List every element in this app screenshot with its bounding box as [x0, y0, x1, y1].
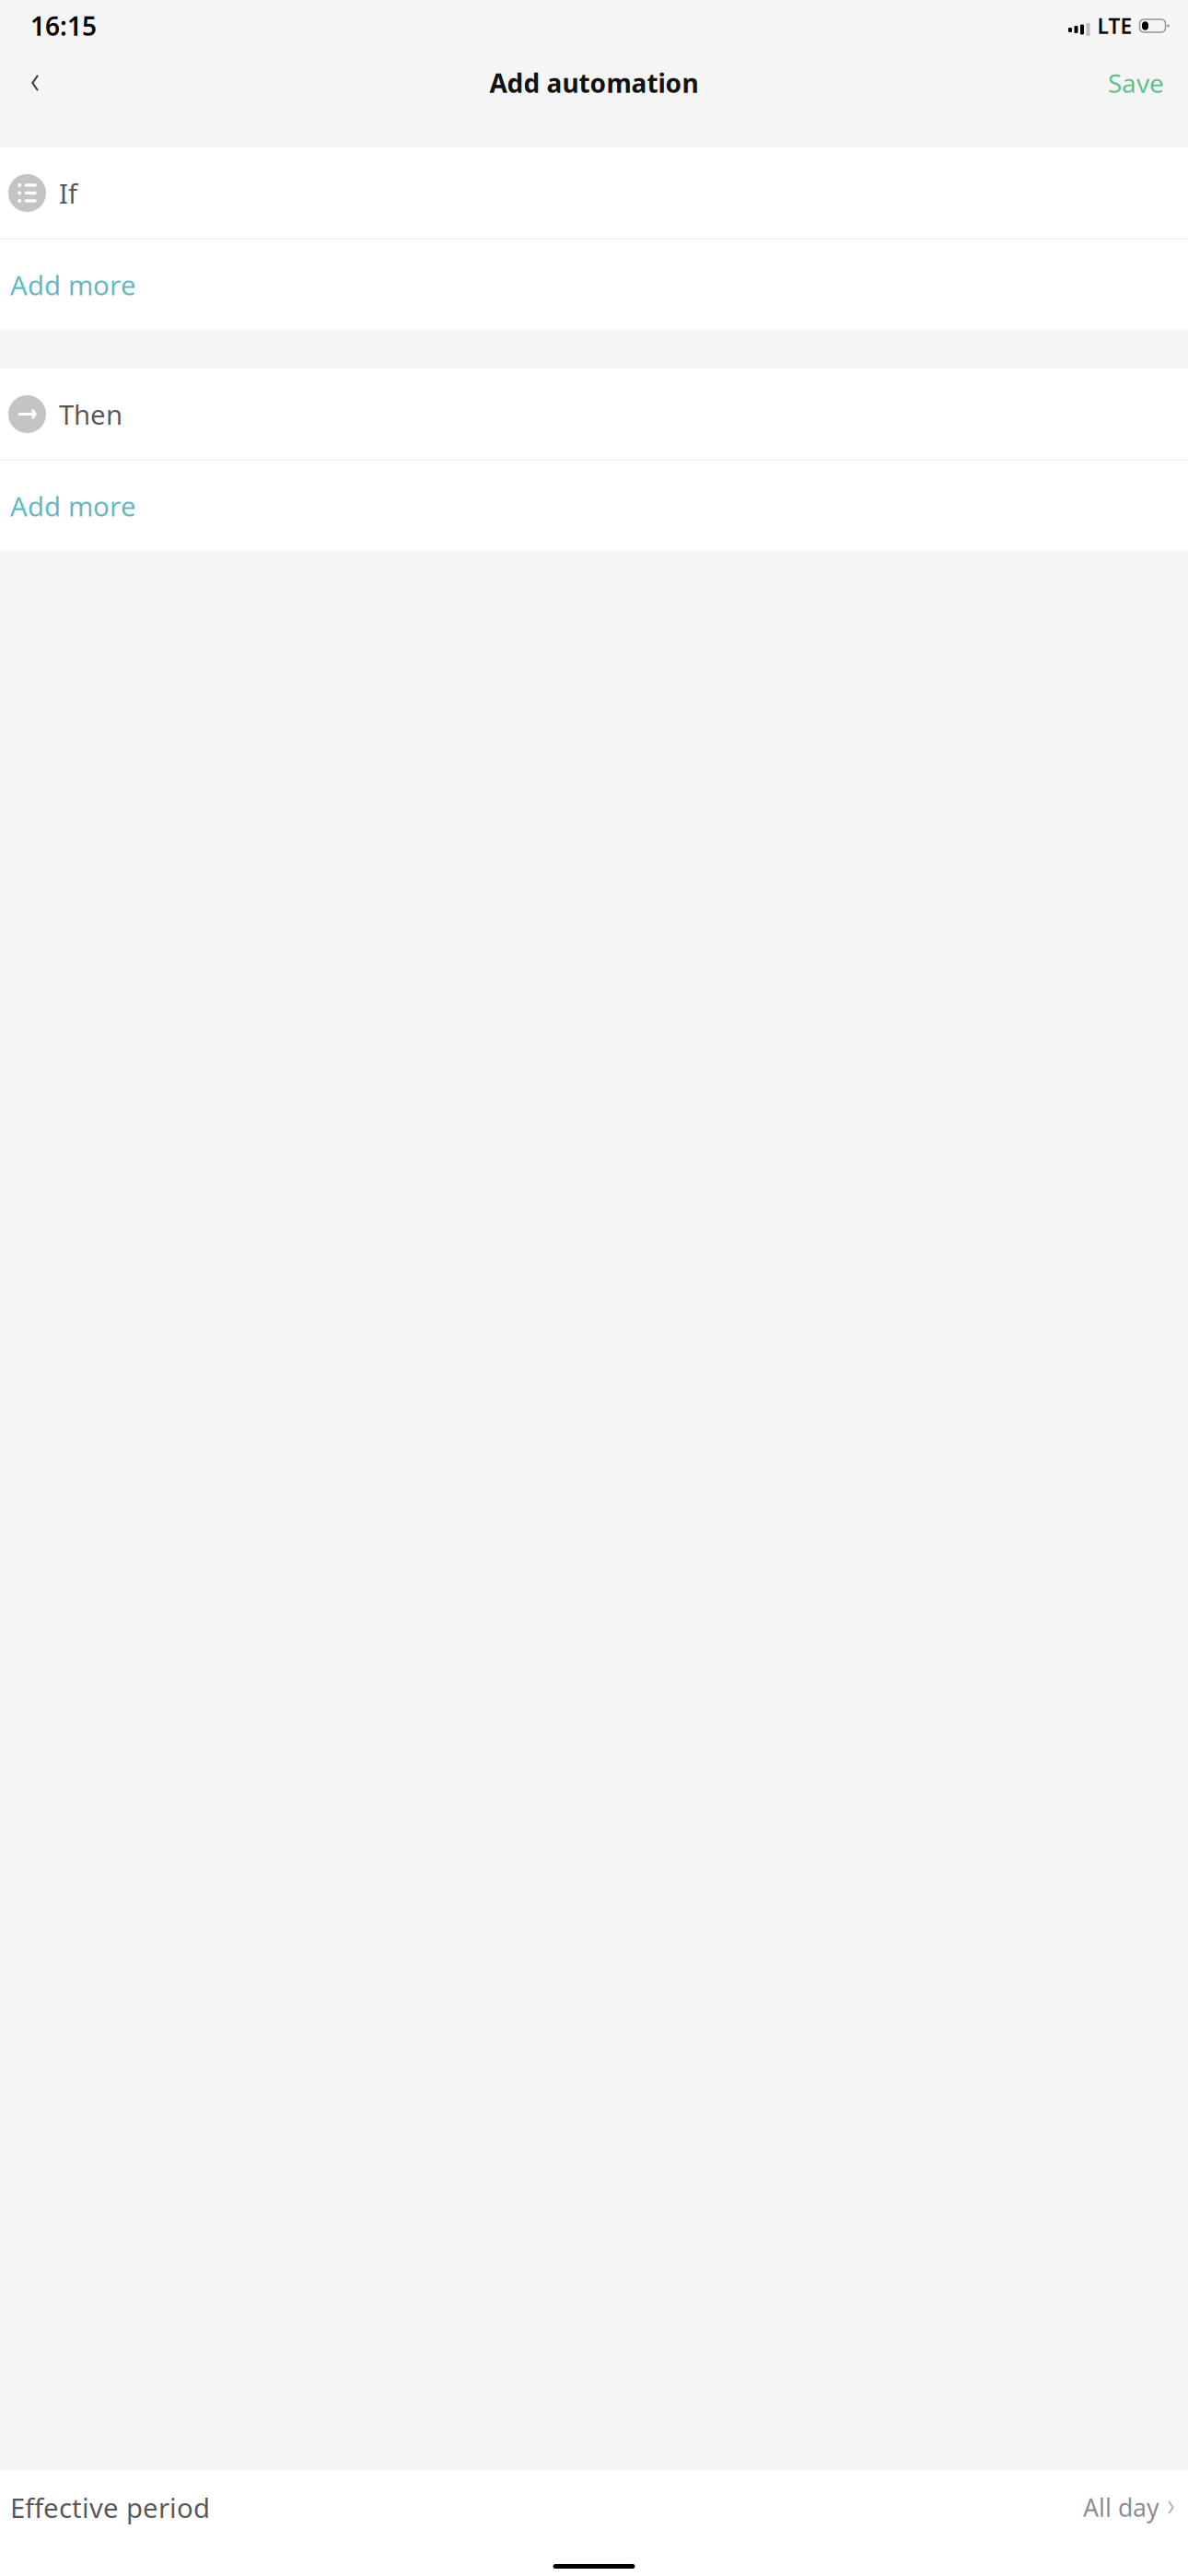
button[interactable]: Back: [11, 59, 59, 107]
button[interactable]: Add more: [0, 240, 1188, 330]
staticText: Add more: [10, 488, 136, 524]
staticText: LTE: [1097, 12, 1132, 40]
staticText: Add more: [10, 267, 136, 303]
staticText: Effective period: [10, 2489, 210, 2525]
staticText: All day: [1083, 2491, 1159, 2524]
staticText: If: [59, 175, 77, 211]
staticText: Save: [1108, 66, 1164, 100]
button[interactable]: Save: [1101, 57, 1171, 109]
button[interactable]: Effective period: [0, 2470, 1188, 2545]
button[interactable]: If: [0, 147, 1188, 239]
staticText: Then: [59, 396, 122, 432]
staticText: 16:15: [30, 9, 97, 43]
staticText: Add automation: [489, 66, 699, 100]
button[interactable]: Add more: [0, 461, 1188, 551]
button[interactable]: Then: [0, 369, 1188, 460]
